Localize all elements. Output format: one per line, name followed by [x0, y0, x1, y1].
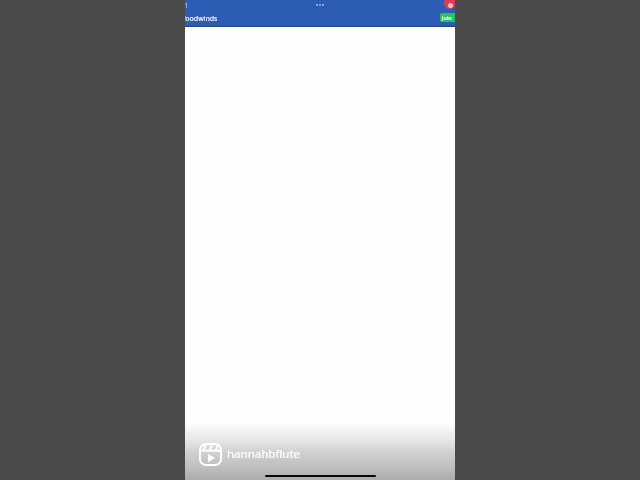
other: Reels [199, 443, 222, 466]
button[interactable]: Woodwinds [185, 14, 225, 23]
staticText: Join [442, 14, 452, 21]
staticText: hannahbflute [227, 446, 301, 462]
staticText: 9:41 [185, 1, 188, 10]
staticText: Woodwinds [185, 14, 218, 23]
button[interactable]: Join [440, 13, 455, 22]
button[interactable]: Stop screen recording [444, 0, 455, 9]
button[interactable]: Reels [199, 443, 301, 466]
